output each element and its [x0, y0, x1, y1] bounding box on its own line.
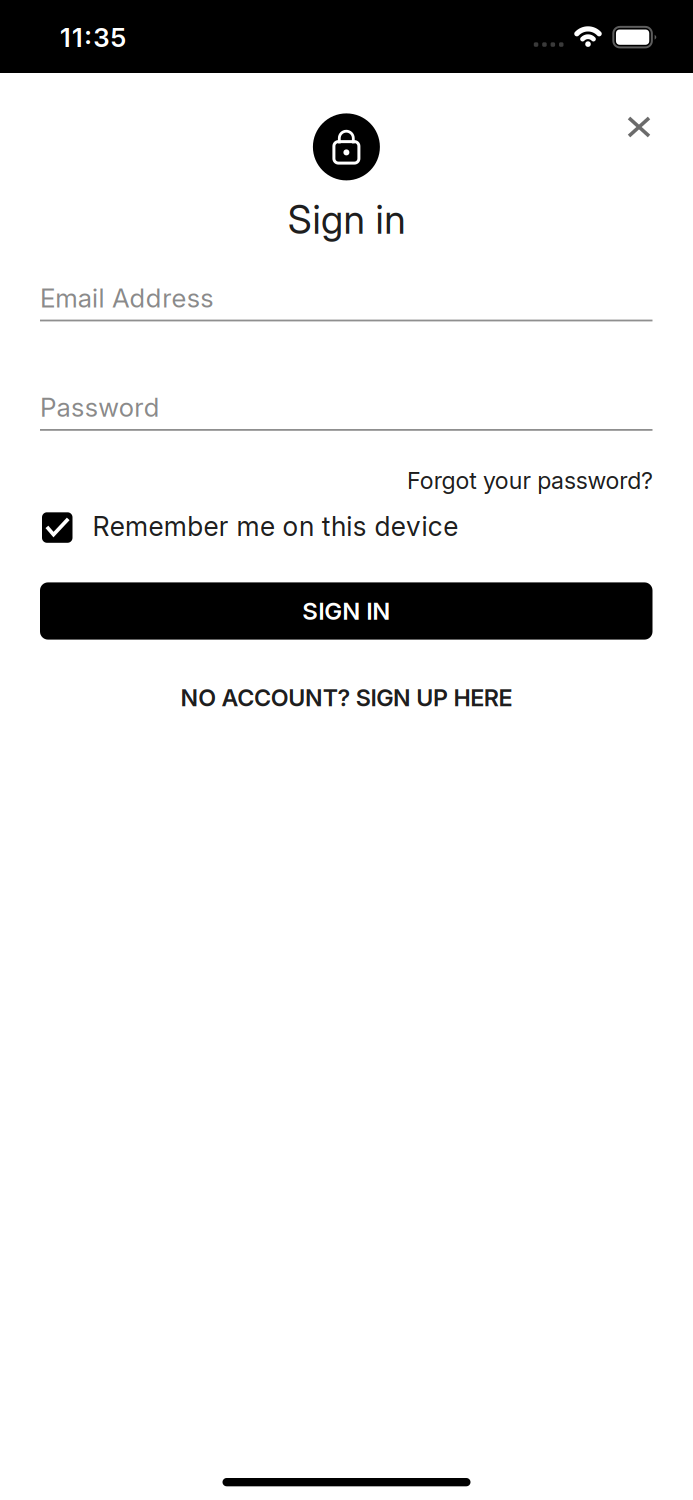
- staticText: Email Address: [40, 282, 213, 314]
- staticText: Password: [40, 392, 160, 423]
- button[interactable]: Forgot your password?: [407, 466, 653, 495]
- button[interactable]: NO ACCOUNT? SIGN UP HERE: [180, 684, 512, 712]
- staticText: NO ACCOUNT? SIGN UP HERE: [180, 684, 512, 712]
- staticText: 11:35: [60, 22, 126, 53]
- staticText: Remember me on this device: [92, 510, 458, 542]
- staticText: SIGN IN: [302, 596, 390, 625]
- button[interactable]: SIGN IN: [40, 582, 652, 640]
- staticText: Sign in: [288, 196, 405, 243]
- button[interactable]: Close: [618, 107, 660, 147]
- button[interactable]: Remember me on this device: [42, 510, 472, 543]
- staticText: Forgot your password?: [407, 466, 653, 495]
